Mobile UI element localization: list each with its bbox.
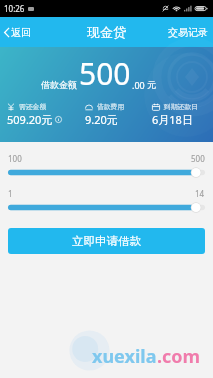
staticText: 509.20元 <box>7 112 53 127</box>
staticText: 100 <box>8 153 22 164</box>
staticText: 到期还款日 <box>164 102 198 111</box>
staticText: .com <box>157 344 201 369</box>
staticText: 14 <box>195 188 205 199</box>
staticText: xuexila <box>92 344 157 369</box>
button[interactable]: Slider from 100 to 500 <box>8 167 205 178</box>
button[interactable]: 交易记录 <box>163 20 213 45</box>
staticText: 9.20元 <box>85 112 118 127</box>
staticText: .00 <box>132 79 145 91</box>
staticText: 元 <box>147 79 156 90</box>
button[interactable]: Slider from 1 to 14 <box>8 202 205 213</box>
staticText: 立即申请借款 <box>72 234 141 248</box>
staticText: 1 <box>8 188 13 199</box>
staticText: 10:26 <box>4 3 25 14</box>
staticText: 借款费用 <box>97 102 125 111</box>
staticText: 6月18日 <box>152 112 193 127</box>
button[interactable]: 立即申请借款 <box>8 228 205 254</box>
staticText: 500 <box>79 53 131 94</box>
staticText: 借款金额 <box>41 79 77 90</box>
staticText: 500 <box>191 153 205 164</box>
staticText: 需还金额 <box>19 102 47 111</box>
staticText: 现金贷 <box>87 24 126 40</box>
staticText: 返回 <box>11 26 31 39</box>
button[interactable]: 返回 <box>0 20 37 45</box>
